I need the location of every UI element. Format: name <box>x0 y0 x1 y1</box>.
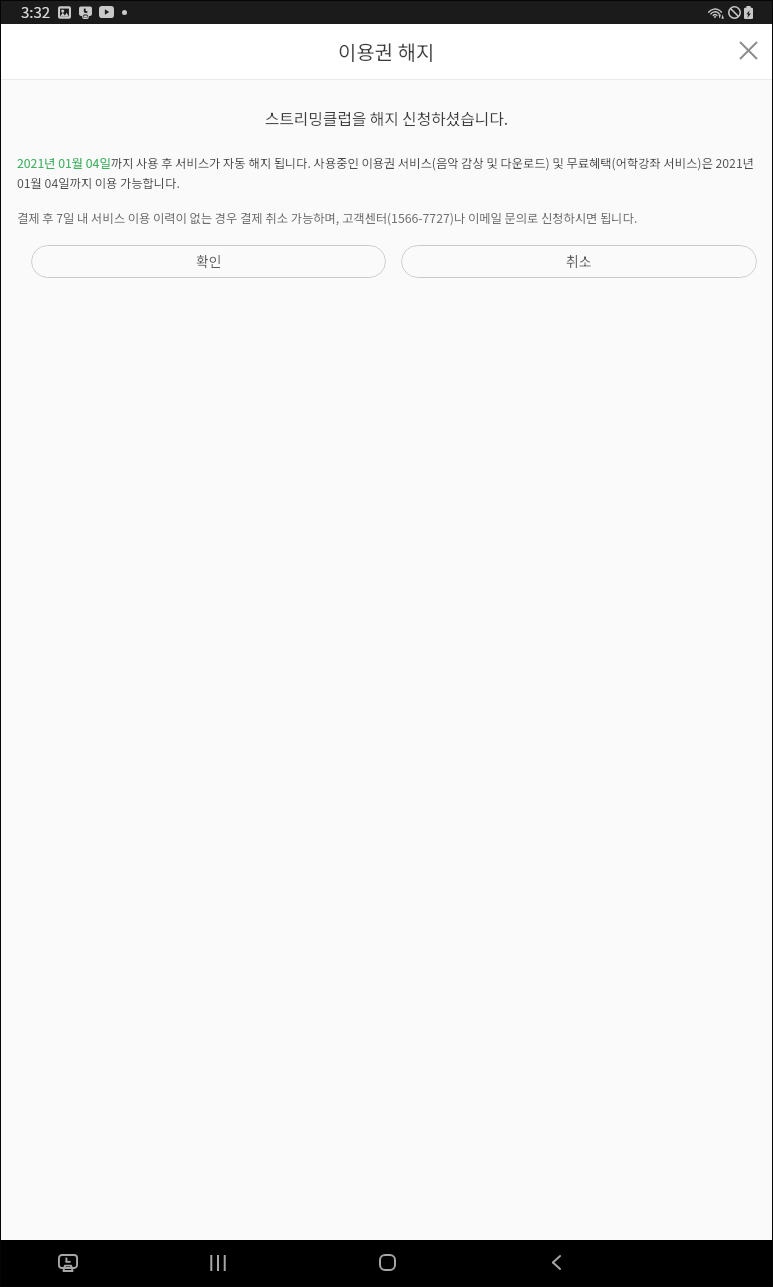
button[interactable]: Recents <box>194 1239 242 1286</box>
staticText: 스트리밍클럽을 해지 신청하셨습니다. <box>0 107 773 130</box>
staticText: 이용권 해지 <box>338 37 435 66</box>
button[interactable]: Home <box>363 1239 411 1286</box>
button[interactable]: Back <box>532 1239 580 1286</box>
button[interactable]: 확인 <box>31 245 386 278</box>
staticText: 3:32 <box>21 1 51 23</box>
staticText: 2021년 01월 04일까지 사용 후 서비스가 자동 해지 됩니다. 사용중… <box>17 154 756 192</box>
staticText: 취소 <box>566 251 592 271</box>
staticText: 결제 후 7일 내 서비스 이용 이력이 없는 경우 결제 취소 가능하며, 고… <box>17 209 756 227</box>
button[interactable]: 취소 <box>401 245 757 278</box>
staticText: 확인 <box>196 251 222 271</box>
button[interactable]: Screen timeout <box>44 1239 92 1286</box>
button[interactable]: Close <box>725 27 771 73</box>
